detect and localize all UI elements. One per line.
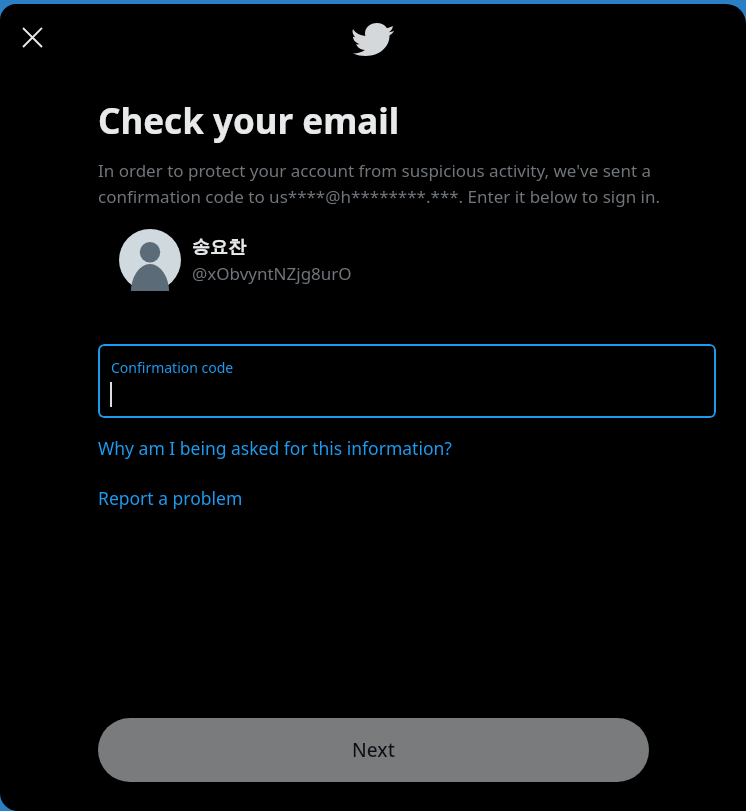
staticText: 송요찬: [192, 236, 246, 259]
button[interactable]: Next: [98, 718, 649, 782]
staticText: Check your email: [98, 97, 400, 145]
button[interactable]: Confirmation code: [98, 344, 716, 418]
staticText: In order to protect your account from su…: [98, 159, 716, 208]
staticText: @xObvyntNZjg8urO: [192, 262, 352, 285]
button[interactable]: Why am I being asked for this informatio…: [98, 436, 452, 460]
button[interactable]: Close: [11, 16, 53, 58]
button[interactable]: 송요찬: [119, 229, 352, 291]
button[interactable]: Report a problem: [98, 486, 243, 510]
staticText: Next: [352, 737, 395, 763]
staticText: Confirmation code: [111, 358, 234, 377]
